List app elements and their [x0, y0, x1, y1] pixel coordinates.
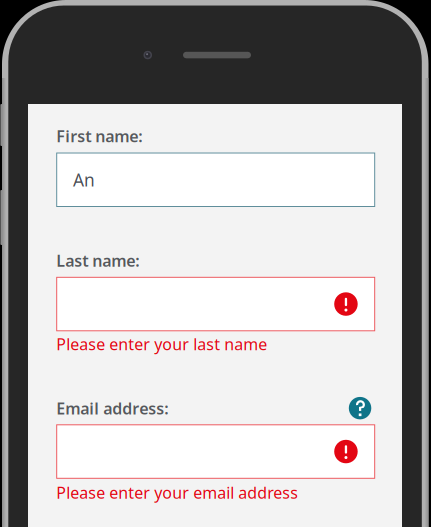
button[interactable] — [56, 277, 375, 331]
staticText: Email address: — [56, 398, 168, 419]
staticText: First name: — [56, 125, 142, 147]
staticText: An — [73, 168, 95, 191]
staticText: Please enter your last name — [56, 333, 267, 355]
button[interactable]: Help with email address — [349, 397, 371, 419]
staticText: Please enter your email address — [56, 482, 298, 503]
button[interactable]: An — [56, 152, 375, 207]
button[interactable] — [56, 424, 375, 479]
staticText: Last name: — [56, 250, 139, 271]
